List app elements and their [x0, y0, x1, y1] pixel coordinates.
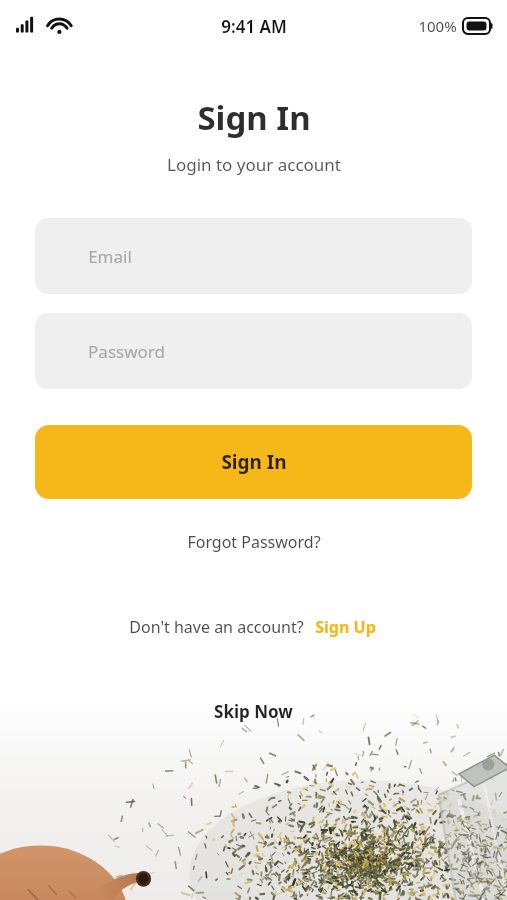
staticText: Forgot Password?	[187, 531, 321, 553]
button[interactable]: Skip Now	[202, 695, 305, 728]
staticText: Login to your account	[167, 153, 341, 176]
staticText: Sign Up	[315, 616, 376, 638]
button[interactable]: Sign In	[35, 425, 472, 499]
staticText: Email	[88, 245, 132, 268]
button[interactable]: Password	[35, 313, 472, 389]
staticText: 100%	[418, 16, 457, 36]
staticText: Skip Now	[214, 700, 293, 723]
staticText: Password	[88, 340, 165, 363]
staticText: Don't have an account?	[129, 616, 304, 638]
staticText: Sign In	[221, 449, 287, 475]
staticText: 9:41 AM	[221, 15, 287, 38]
button[interactable]: Email	[35, 218, 472, 294]
button[interactable]: Forgot Password?	[177, 526, 331, 558]
button[interactable]: Sign Up	[312, 613, 379, 641]
staticText: Sign In	[197, 95, 311, 140]
